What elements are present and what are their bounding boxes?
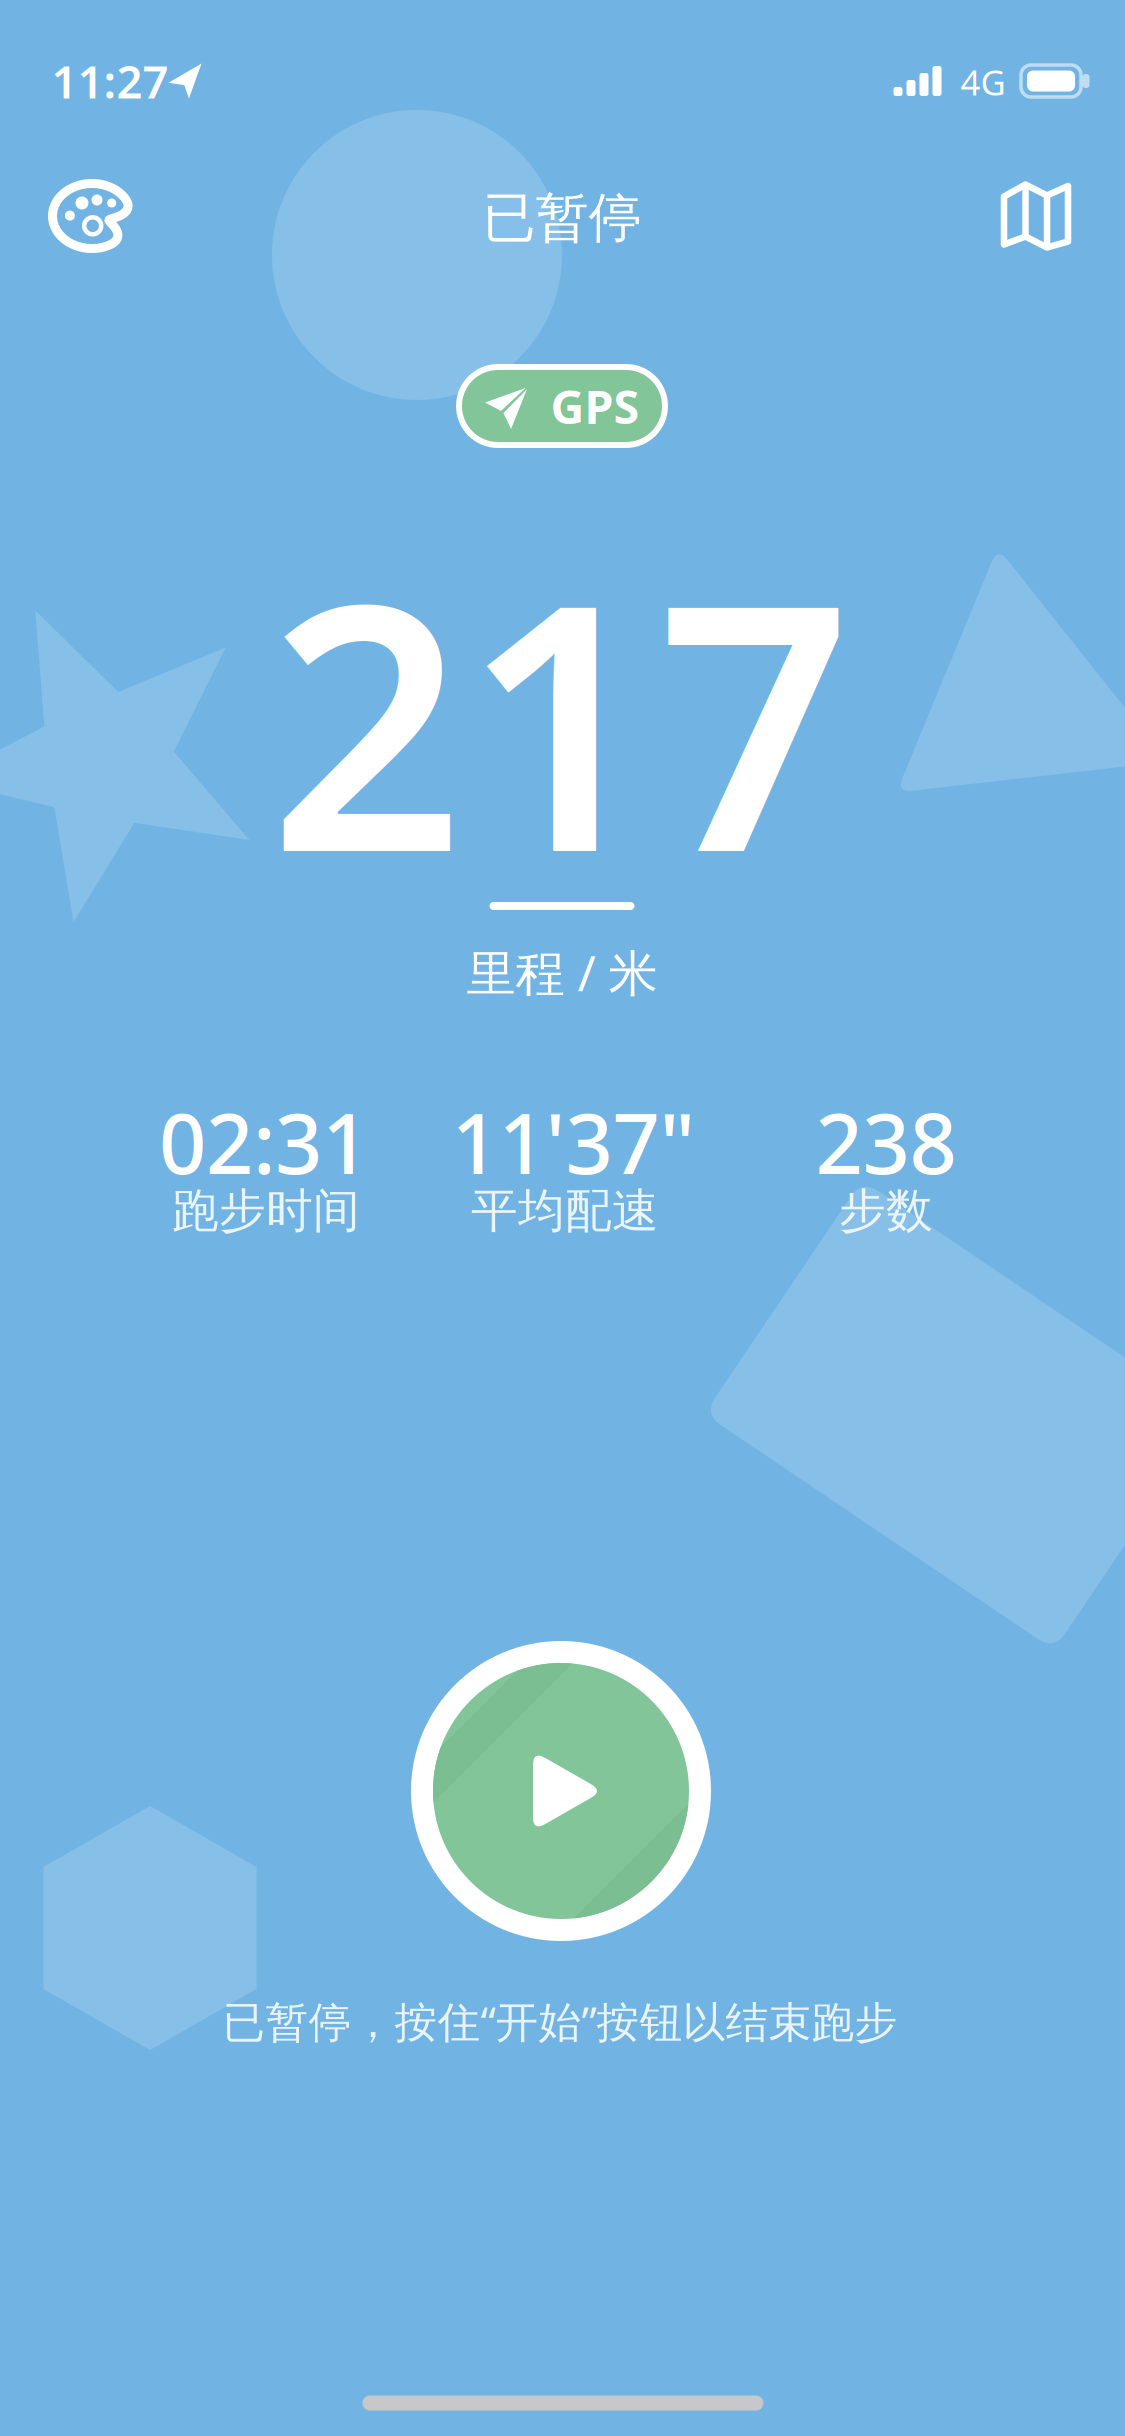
button[interactable]: 开始 — [411, 1641, 711, 1941]
staticText: 已暂停 — [482, 185, 641, 251]
button[interactable]: GPS 信号 — [459, 367, 665, 445]
staticText: 跑步时间 — [172, 1182, 360, 1240]
staticText: 里程 / 米 — [466, 939, 657, 1005]
staticText: 已暂停，按住“开始”按钮以结束跑步 — [222, 1993, 897, 2049]
staticText: 4G — [960, 59, 1005, 105]
staticText: 11:27 — [51, 51, 168, 111]
staticText: 11'37" — [451, 1087, 694, 1197]
staticText: 平均配速 — [471, 1182, 659, 1240]
button[interactable]: 地图 — [991, 176, 1081, 256]
staticText: GPS — [550, 375, 639, 437]
button[interactable]: 主题 — [47, 176, 137, 256]
staticText: 238 — [815, 1087, 956, 1197]
staticText: 02:31 — [159, 1087, 369, 1197]
staticText: 217 — [269, 493, 851, 945]
staticText: 步数 — [839, 1182, 933, 1240]
